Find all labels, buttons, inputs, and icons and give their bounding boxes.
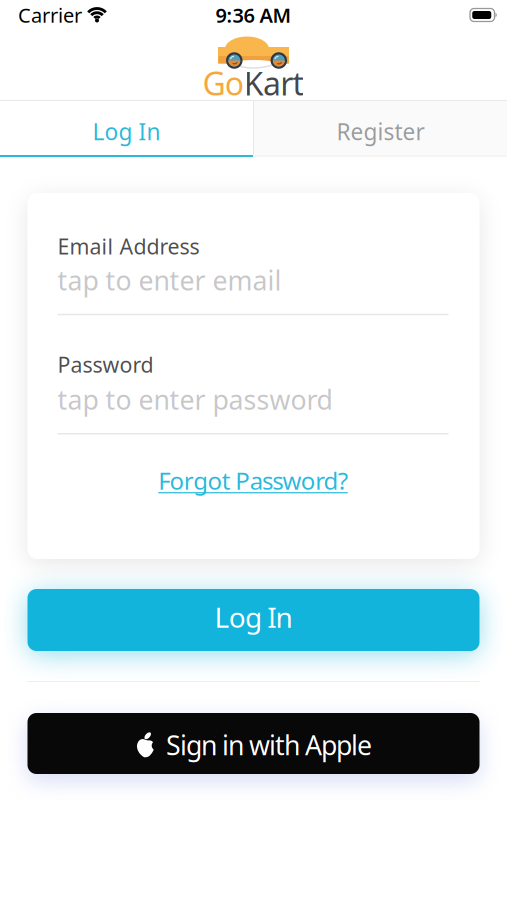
- staticText: Carrier: [18, 2, 82, 28]
- staticText: tap to enter email: [57, 262, 281, 298]
- button[interactable]: Log In: [0, 101, 253, 155]
- staticText: Forgot Password?: [158, 464, 348, 496]
- staticText: Email Address: [57, 232, 199, 260]
- button[interactable]: tap to enter password: [57, 382, 448, 434]
- staticText: Sign in with Apple: [166, 727, 372, 763]
- staticText: Go: [203, 62, 244, 104]
- button[interactable]: Log In: [27, 589, 479, 651]
- button[interactable]: Forgot Password?: [158, 464, 348, 496]
- button[interactable]: Sign in with Apple: [27, 713, 479, 774]
- staticText: Log In: [92, 116, 160, 146]
- button[interactable]: Register: [254, 101, 507, 155]
- button[interactable]: tap to enter email: [57, 262, 448, 315]
- staticText: Kart: [244, 62, 304, 104]
- staticText: Log In: [214, 598, 292, 636]
- staticText: tap to enter password: [57, 382, 332, 417]
- staticText: Register: [336, 116, 424, 146]
- staticText: Password: [57, 350, 153, 378]
- staticText: 9:36 AM: [215, 2, 291, 28]
